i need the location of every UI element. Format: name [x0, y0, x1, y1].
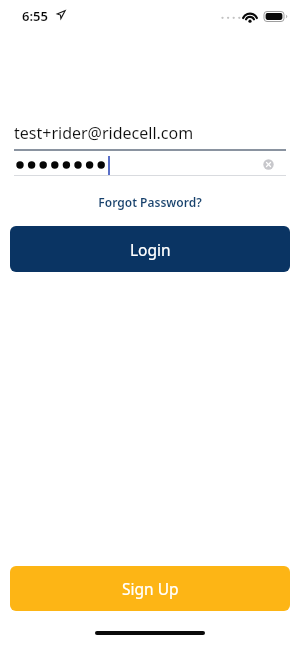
staticText: Login [130, 239, 171, 260]
staticText: Sign Up [122, 578, 179, 599]
staticText: 6:55 [22, 7, 48, 25]
staticText: test+rider@ridecell.com [14, 122, 194, 144]
button[interactable]: Login [10, 226, 290, 272]
button[interactable]: Forgot Password? [98, 194, 202, 210]
button[interactable]: Sign Up [10, 566, 290, 611]
